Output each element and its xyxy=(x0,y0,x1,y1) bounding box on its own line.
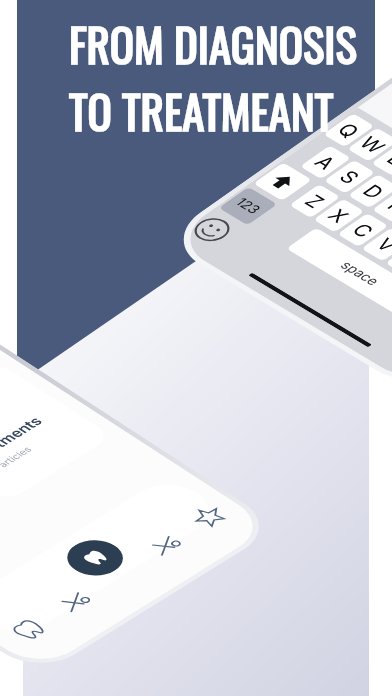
staticText: E xyxy=(318,116,348,137)
button[interactable]: T xyxy=(355,138,392,172)
button[interactable]: space xyxy=(222,195,369,286)
staticText: C xyxy=(283,187,315,208)
staticText: N xyxy=(354,230,387,252)
button[interactable]: Tools xyxy=(87,527,133,555)
button[interactable]: G xyxy=(332,170,384,204)
button[interactable]: Tooth xyxy=(42,555,87,584)
staticText: F xyxy=(318,163,349,183)
staticText: B xyxy=(331,216,363,237)
button[interactable]: X xyxy=(249,166,301,200)
button[interactable]: B xyxy=(321,209,373,243)
staticText: R xyxy=(342,131,373,152)
staticText: FROM DIAGNOSIS xyxy=(69,10,357,77)
button[interactable]: D xyxy=(284,141,336,175)
staticText: Z xyxy=(236,158,267,179)
button[interactable]: Y xyxy=(379,153,392,187)
button[interactable]: N xyxy=(345,224,392,258)
button[interactable]: F xyxy=(308,156,360,190)
staticText: Q xyxy=(268,87,301,109)
staticText: H xyxy=(365,191,392,213)
staticText: T xyxy=(366,145,392,166)
button[interactable]: Kit xyxy=(178,470,223,499)
staticText: V xyxy=(307,201,339,222)
button[interactable]: A xyxy=(236,112,288,147)
button[interactable]: E xyxy=(307,109,359,143)
button[interactable] xyxy=(0,369,38,510)
staticText: space xyxy=(273,226,320,256)
button[interactable]: W xyxy=(283,95,335,129)
button[interactable]: H xyxy=(356,185,392,219)
staticText: TO TREATMEANT xyxy=(69,77,334,144)
staticText: M xyxy=(377,244,392,267)
button[interactable]: J xyxy=(380,199,392,233)
button[interactable]: Q xyxy=(259,80,311,114)
staticText: G xyxy=(341,177,374,199)
staticText: S xyxy=(270,134,301,155)
staticText: Treatments xyxy=(0,354,83,406)
button[interactable]: C xyxy=(273,180,325,214)
button[interactable]: V xyxy=(297,195,349,229)
button[interactable]: Shift xyxy=(189,130,249,168)
button[interactable]: Treatments xyxy=(0,300,149,441)
staticText: W xyxy=(290,100,327,124)
staticText: Y xyxy=(389,159,392,180)
button[interactable]: S xyxy=(260,127,312,161)
staticText: J xyxy=(391,207,392,227)
button[interactable]: R xyxy=(331,124,383,158)
button[interactable]: M xyxy=(369,238,392,272)
staticText: A xyxy=(246,119,277,140)
button[interactable]: Z xyxy=(225,151,277,185)
staticText: X xyxy=(259,172,291,194)
staticText: D xyxy=(294,148,326,170)
staticText: 68 articles xyxy=(19,384,71,416)
